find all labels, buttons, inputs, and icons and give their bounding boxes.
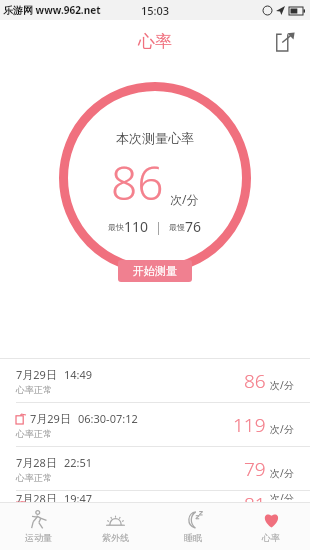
staticText: 7月29日 [30, 411, 71, 426]
staticText: 心率 [262, 532, 280, 543]
staticText: 乐游网 www.962.net [3, 3, 101, 17]
staticText: 运动量 [25, 532, 52, 543]
staticText: 心率正常 [16, 472, 52, 483]
staticText: 心率正常 [16, 428, 52, 439]
staticText: 次/分 [270, 422, 294, 436]
staticText: 心率正常 [16, 384, 52, 395]
staticText: 次/分 [270, 378, 294, 392]
staticText: 19:47 [64, 491, 93, 502]
staticText: 110 [124, 217, 149, 236]
button[interactable]: 紫外线 [77, 503, 154, 550]
staticText: 7月29日 [16, 367, 57, 382]
button[interactable]: 7月28日 [0, 491, 310, 502]
staticText: 22:51 [64, 455, 93, 470]
staticText: 81 [244, 491, 266, 502]
button[interactable]: Share [270, 26, 300, 56]
button[interactable]: 心率 [232, 503, 310, 550]
staticText: 心率 [138, 31, 172, 52]
staticText: 7月28日 [16, 455, 57, 470]
staticText: | [149, 219, 169, 235]
staticText: 86 [244, 368, 266, 394]
staticText: 86 [111, 151, 164, 214]
button[interactable]: 运动量 [0, 503, 77, 550]
staticText: 最快 [108, 222, 124, 232]
button[interactable]: 7月29日 [0, 403, 310, 447]
staticText: 本次测量心率 [116, 130, 194, 146]
staticText: 79 [244, 456, 266, 482]
staticText: 次/分 [170, 191, 199, 207]
staticText: 119 [233, 412, 266, 438]
staticText: 开始测量 [133, 264, 177, 278]
staticText: 76 [185, 217, 202, 236]
staticText: 7月28日 [16, 491, 57, 502]
staticText: 次/分 [270, 466, 294, 480]
button[interactable]: 开始测量 [118, 260, 192, 282]
staticText: 睡眠 [184, 532, 202, 543]
staticText: 次/分 [270, 491, 294, 500]
button[interactable]: 睡眠 [154, 503, 232, 550]
staticText: 14:49 [64, 367, 93, 382]
staticText: 最慢 [169, 222, 185, 232]
button[interactable]: 7月28日 [0, 447, 310, 491]
staticText: 15:03 [141, 3, 170, 18]
staticText: 06:30-07:12 [78, 411, 138, 426]
button[interactable]: 7月29日 [0, 359, 310, 403]
staticText: 紫外线 [102, 532, 129, 543]
